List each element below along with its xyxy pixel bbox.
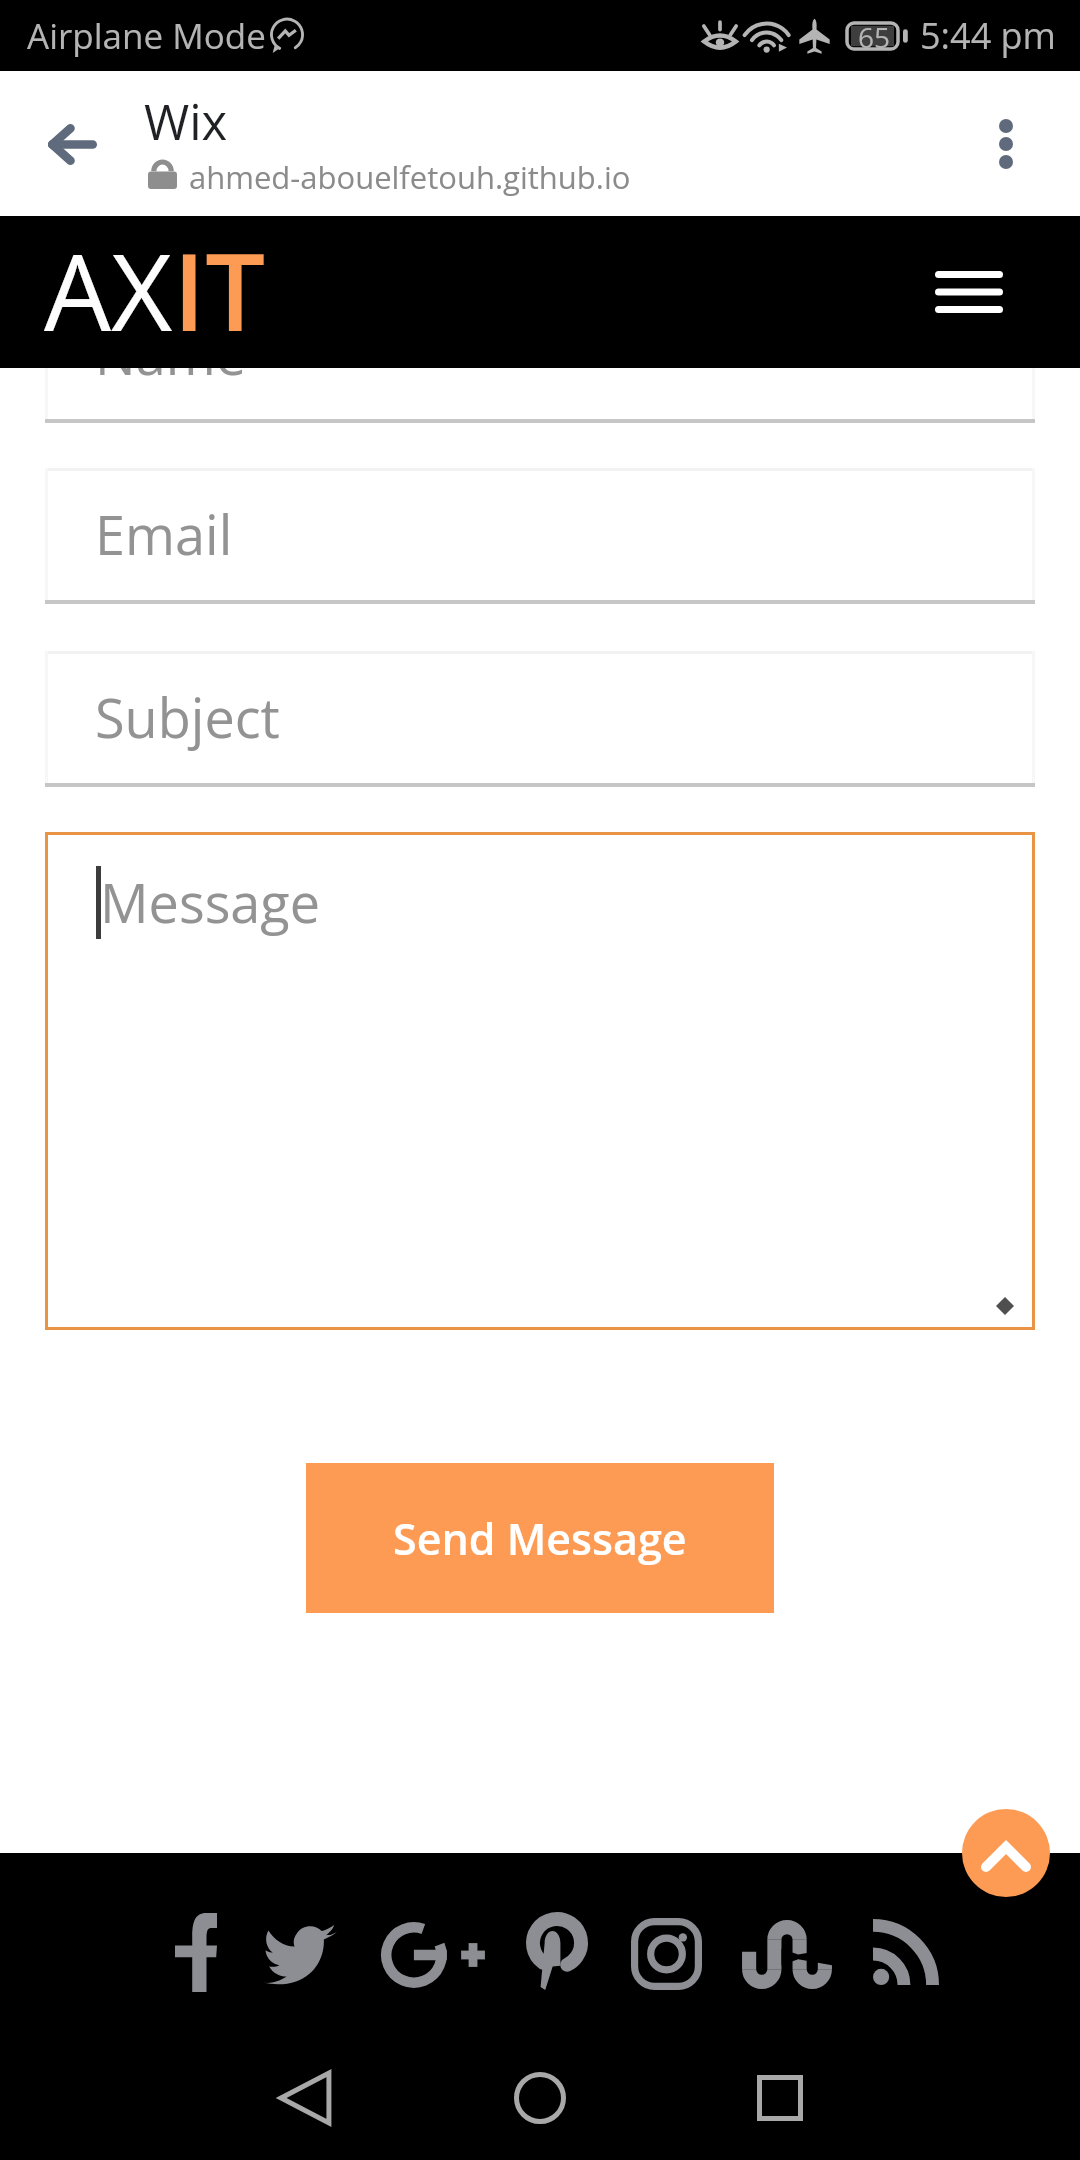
button[interactable]: Subject [45, 651, 1035, 787]
staticText: 65 [858, 18, 891, 52]
staticText: AX [44, 218, 173, 362]
button[interactable]: Facebook [138, 1897, 254, 2007]
staticText: Send Message [393, 1509, 687, 1568]
staticText: Email [95, 497, 233, 571]
staticText: Subject [95, 680, 280, 754]
button[interactable]: Back [16, 89, 126, 199]
button[interactable]: Message [45, 832, 1035, 1330]
staticText: Name [95, 368, 246, 391]
staticText: Message [100, 865, 321, 939]
button[interactable]: Scroll to top [962, 1809, 1050, 1897]
button[interactable]: Instagram [608, 1899, 724, 2009]
button[interactable]: Email [45, 468, 1035, 604]
staticText: ahmed-abouelfetouh.github.io [189, 156, 631, 198]
staticText: Airplane Mode [27, 12, 266, 60]
button[interactable]: RSS [848, 1897, 964, 2007]
button[interactable]: Twitter [242, 1900, 358, 2010]
button[interactable]: Back [245, 2038, 365, 2158]
button[interactable]: More options [954, 92, 1058, 196]
button[interactable]: Menu [906, 257, 1032, 327]
staticText: IT [173, 218, 266, 362]
button[interactable]: Pinterest [499, 1896, 615, 2006]
button[interactable]: Send Message [306, 1463, 774, 1613]
button[interactable]: Recents [720, 2038, 840, 2158]
button[interactable]: StumbleUpon [729, 1899, 845, 2009]
staticText: 5:44 pm [920, 11, 1056, 60]
button[interactable]: Home [480, 2038, 600, 2158]
button[interactable]: Name [45, 368, 1035, 423]
staticText: Wix [144, 88, 228, 155]
button[interactable]: Google Plus [376, 1900, 492, 2010]
